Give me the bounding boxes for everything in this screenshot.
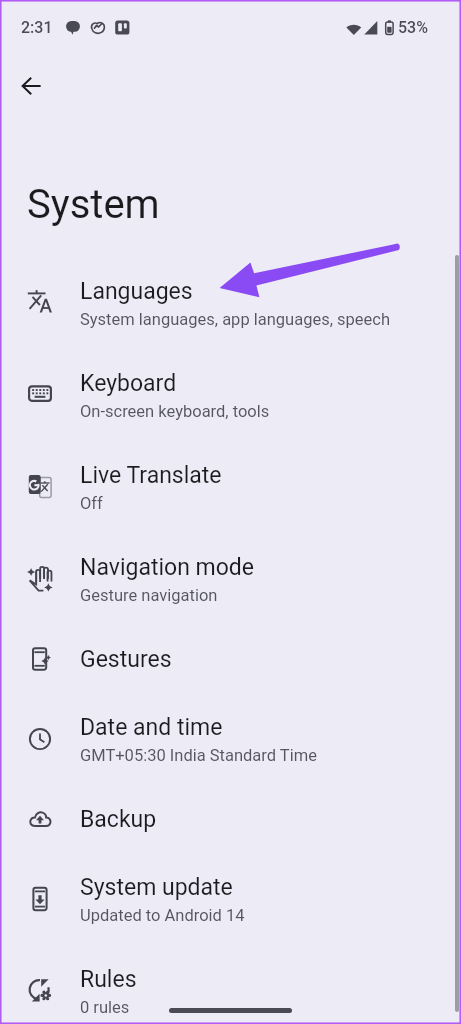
button[interactable]: System update [0, 853, 461, 945]
staticText: Updated to Android 14 [80, 906, 245, 925]
staticText: Keyboard [80, 370, 177, 397]
button[interactable]: Keyboard [0, 349, 461, 441]
staticText: System languages, app languages, speech [80, 310, 391, 329]
staticText: Gestures [80, 646, 172, 673]
staticText: On-screen keyboard, tools [80, 402, 270, 421]
staticText: 0 rules [80, 998, 130, 1017]
staticText: Live Translate [80, 462, 222, 489]
button[interactable]: Back [10, 64, 54, 108]
staticText: Rules [80, 966, 137, 993]
staticText: System [27, 181, 160, 228]
staticText: Gesture navigation [80, 586, 218, 605]
button[interactable]: Navigation mode [0, 533, 461, 625]
staticText: Off [80, 494, 103, 513]
button[interactable]: Gestures [0, 625, 461, 693]
button[interactable]: Backup [0, 785, 461, 853]
staticText: GMT+05:30 India Standard Time [80, 746, 317, 765]
staticText: 2:31 [21, 18, 53, 37]
staticText: Date and time [80, 714, 223, 741]
staticText: Languages [80, 278, 193, 305]
button[interactable]: Live Translate [0, 441, 461, 533]
button[interactable]: Languages [0, 257, 461, 349]
button[interactable]: Rules [0, 945, 461, 1024]
staticText: System update [80, 874, 233, 901]
button[interactable]: Date and time [0, 693, 461, 785]
staticText: Backup [80, 806, 157, 833]
staticText: Navigation mode [80, 554, 255, 581]
staticText: 53% [398, 18, 428, 37]
